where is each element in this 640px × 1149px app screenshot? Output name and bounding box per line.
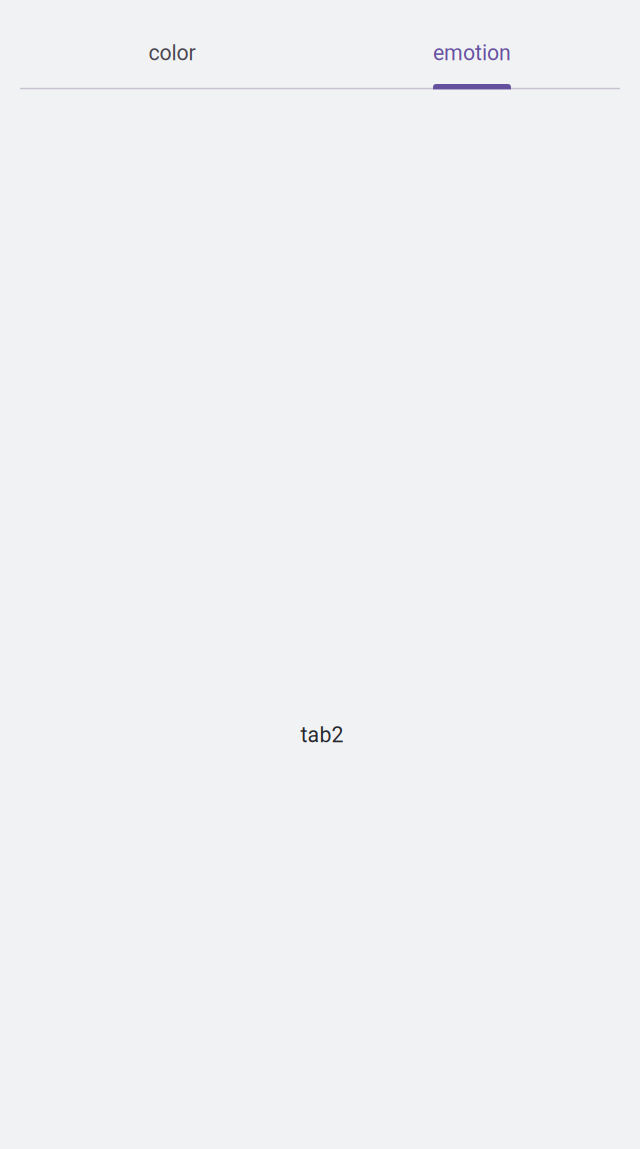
staticText: emotion <box>433 40 511 65</box>
button[interactable]: color <box>20 0 320 90</box>
button[interactable]: emotion <box>320 0 620 90</box>
staticText: color <box>148 40 195 65</box>
staticText: tab2 <box>300 722 343 747</box>
